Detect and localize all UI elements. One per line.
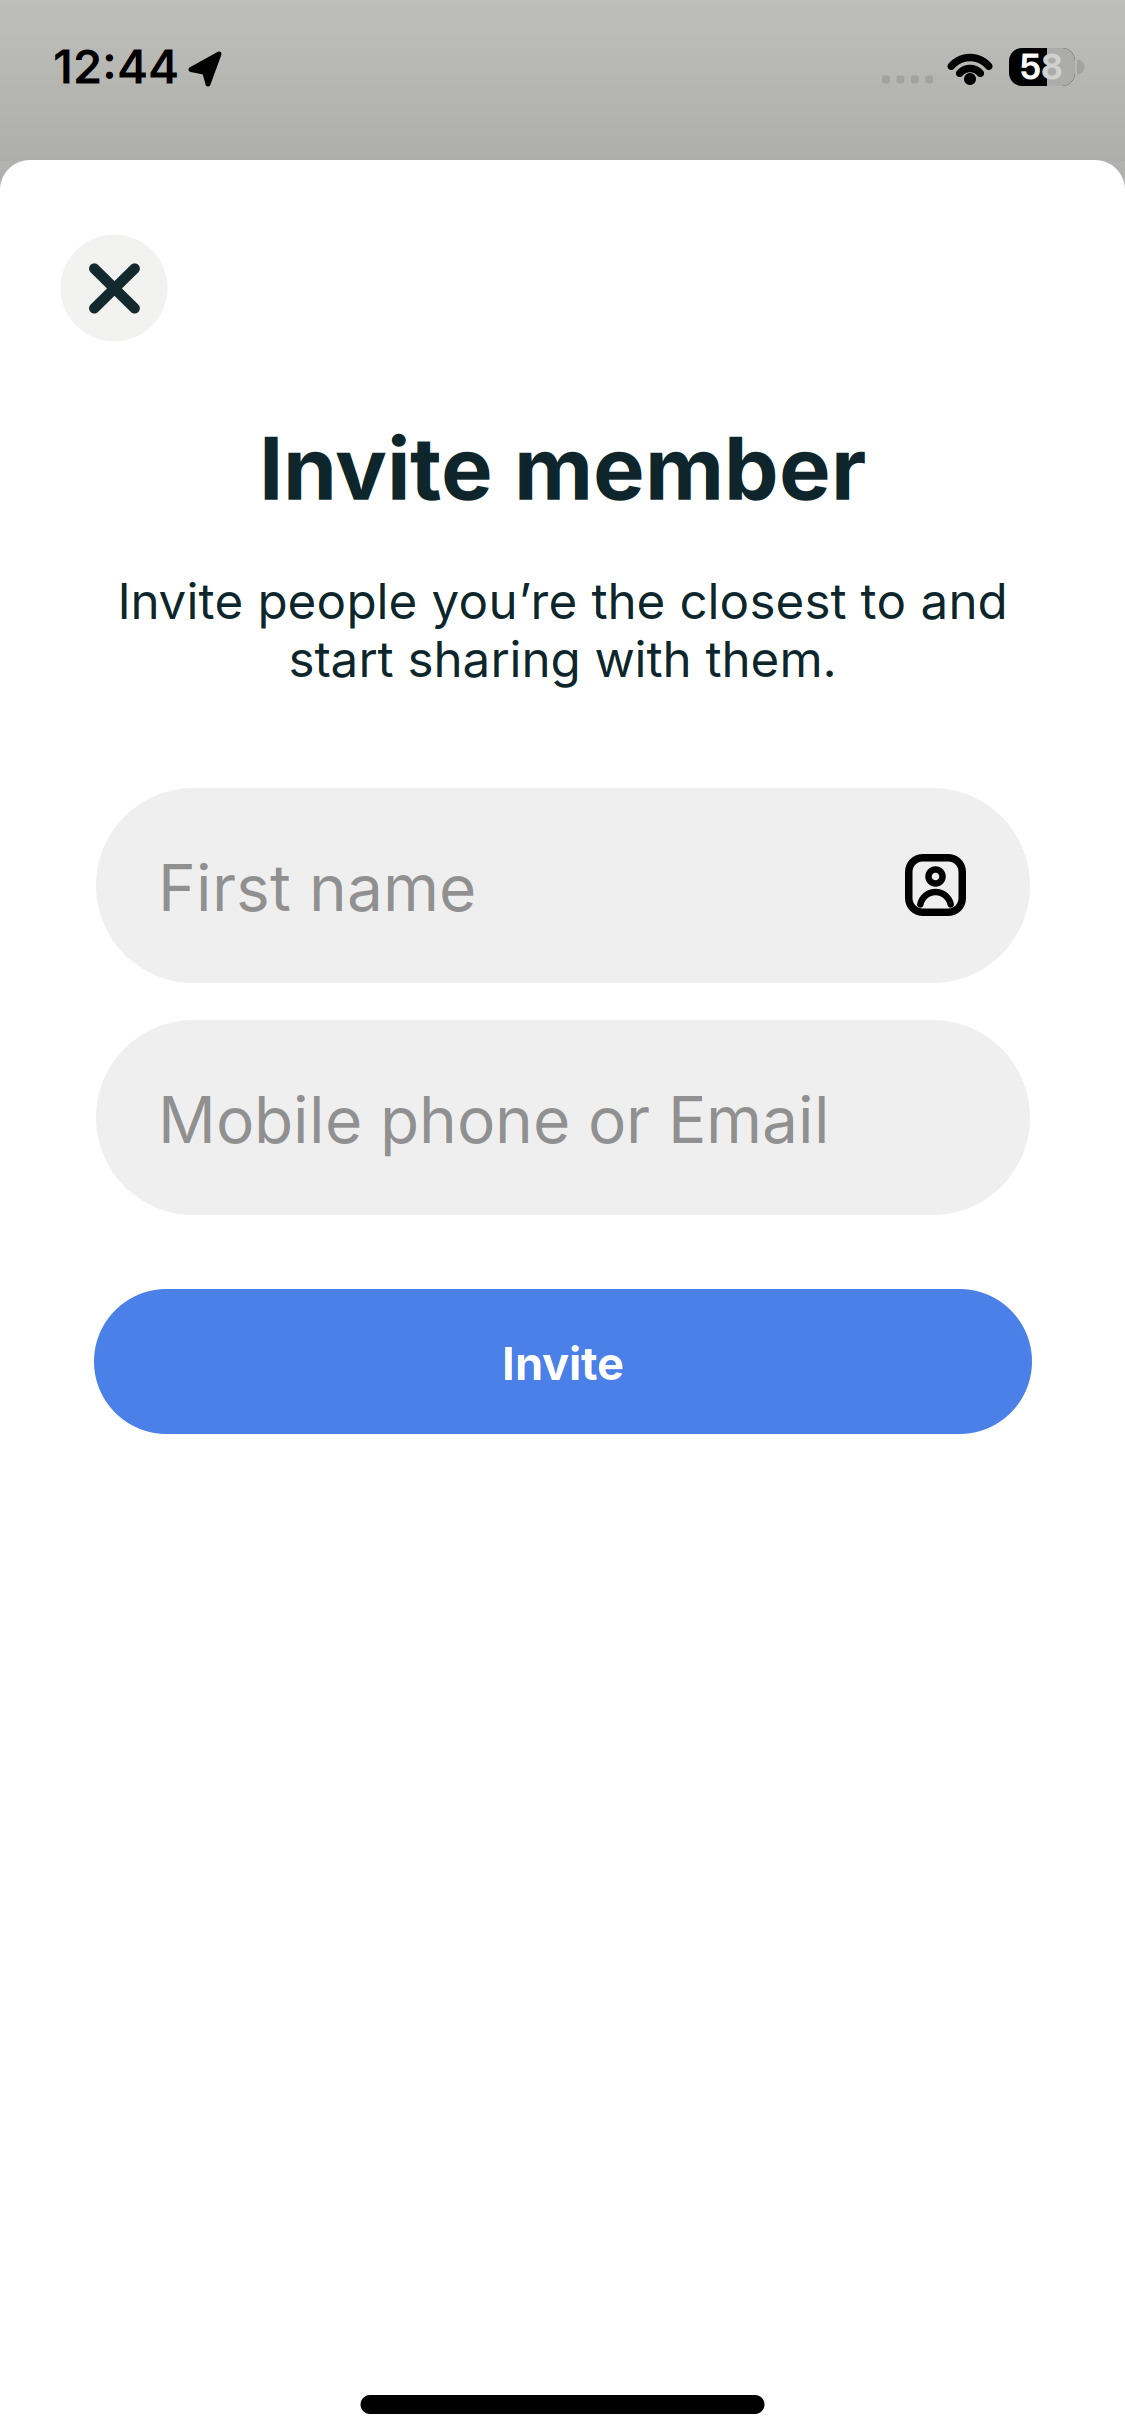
button[interactable]: First name	[96, 788, 1030, 983]
staticText: First name	[158, 850, 476, 925]
staticText: Invite	[502, 1337, 624, 1390]
staticText: 5	[1020, 47, 1041, 87]
staticText: Mobile phone or Email	[158, 1082, 830, 1157]
button[interactable]: Invite	[94, 1289, 1032, 1434]
staticText: Invite people you’re the closest to and	[117, 572, 1007, 630]
staticText: start sharing with them.	[288, 630, 836, 688]
button[interactable]: Close	[60, 234, 167, 341]
staticText: Invite member	[259, 417, 866, 519]
staticText: 12:44	[53, 39, 179, 94]
button[interactable]: Mobile phone or Email	[96, 1020, 1030, 1215]
staticText: 8	[1041, 47, 1063, 87]
